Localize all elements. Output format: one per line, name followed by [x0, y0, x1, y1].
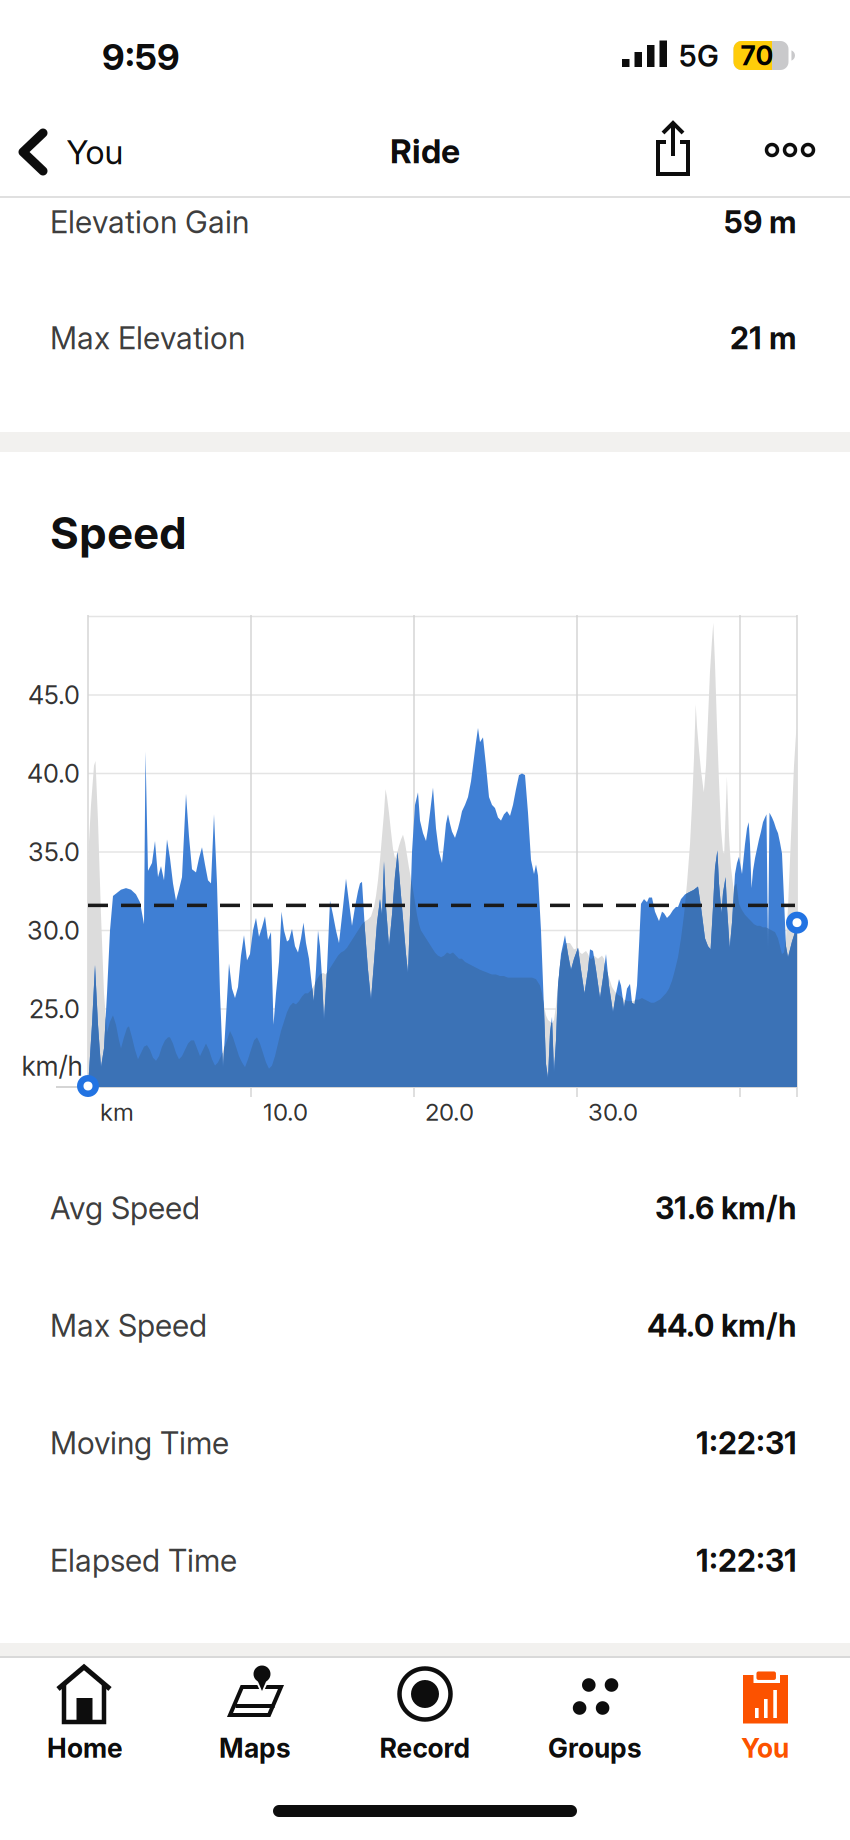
- staticText: 30.0: [27, 916, 80, 945]
- button[interactable]: Maps: [170, 1662, 340, 1766]
- staticText: Ride: [390, 131, 460, 171]
- staticText: 44.0 km/h: [647, 1307, 797, 1344]
- button[interactable]: Home: [0, 1662, 170, 1766]
- staticText: 35.0: [28, 837, 80, 867]
- staticText: You: [741, 1732, 789, 1764]
- staticText: You: [66, 132, 123, 172]
- staticText: Max Elevation: [50, 320, 245, 356]
- staticText: 9:59: [102, 36, 180, 78]
- staticText: Elevation Gain: [50, 204, 249, 240]
- staticText: Speed: [50, 507, 187, 559]
- button[interactable]: You: [17, 125, 142, 179]
- button[interactable]: You: [680, 1662, 850, 1766]
- button[interactable]: More: [763, 140, 817, 160]
- staticText: Maps: [219, 1732, 291, 1764]
- staticText: 31.6 km/h: [655, 1190, 797, 1226]
- staticText: km/h: [21, 1050, 82, 1082]
- staticText: Groups: [548, 1732, 642, 1764]
- staticText: 40.0: [27, 759, 80, 788]
- button[interactable]: Record: [340, 1662, 510, 1766]
- staticText: Moving Time: [50, 1425, 229, 1461]
- button[interactable]: Share: [657, 117, 689, 181]
- staticText: km: [100, 1098, 134, 1126]
- staticText: Record: [379, 1732, 470, 1764]
- button[interactable]: Groups: [510, 1662, 680, 1766]
- staticText: 25.0: [29, 994, 80, 1024]
- staticText: 1:22:31: [696, 1425, 797, 1461]
- staticText: 59 m: [724, 204, 797, 240]
- staticText: 45.0: [28, 680, 80, 710]
- staticText: Elapsed Time: [50, 1542, 237, 1579]
- staticText: 5G: [679, 39, 719, 73]
- staticText: Avg Speed: [50, 1190, 200, 1226]
- staticText: 70: [740, 40, 773, 71]
- staticText: Max Speed: [50, 1307, 207, 1344]
- staticText: Home: [47, 1732, 123, 1764]
- staticText: 10.0: [263, 1098, 308, 1126]
- staticText: 1:22:31: [696, 1542, 797, 1579]
- staticText: 20.0: [425, 1098, 474, 1126]
- staticText: 30.0: [588, 1098, 638, 1126]
- staticText: 21 m: [730, 320, 797, 356]
